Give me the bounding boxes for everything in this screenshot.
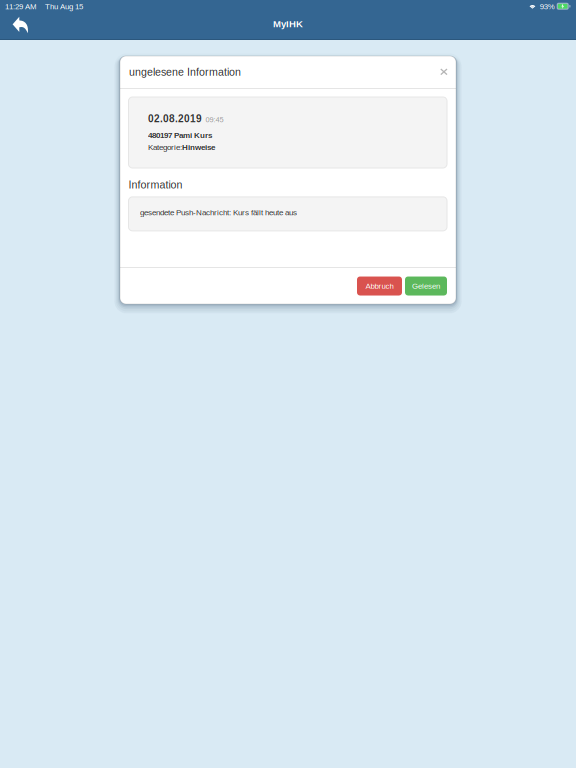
staticText: ungelesene Information xyxy=(129,66,241,78)
staticText: Gelesen xyxy=(412,282,440,290)
staticText: MyIHK xyxy=(273,19,303,29)
staticText: 480197 Pami Kurs xyxy=(148,131,212,140)
staticText: 02.08.2019 xyxy=(148,113,202,124)
button[interactable]: Close xyxy=(431,56,456,88)
staticText: gesendete Push-Nachricht: Kurs fällt heu… xyxy=(140,208,297,217)
staticText: Information xyxy=(128,179,182,191)
staticText: Abbruch xyxy=(365,282,393,290)
staticText: 11:29 AM xyxy=(5,2,37,11)
button[interactable]: Back xyxy=(0,16,38,36)
staticText: 09:45 xyxy=(205,116,223,124)
staticText: 93% xyxy=(540,2,555,11)
staticText: Kategorie: xyxy=(148,143,182,151)
staticText: Hinweise xyxy=(182,143,215,151)
button[interactable]: Gelesen xyxy=(405,276,447,295)
button[interactable]: Abbruch xyxy=(357,276,402,295)
staticText: Thu Aug 15 xyxy=(45,2,83,11)
